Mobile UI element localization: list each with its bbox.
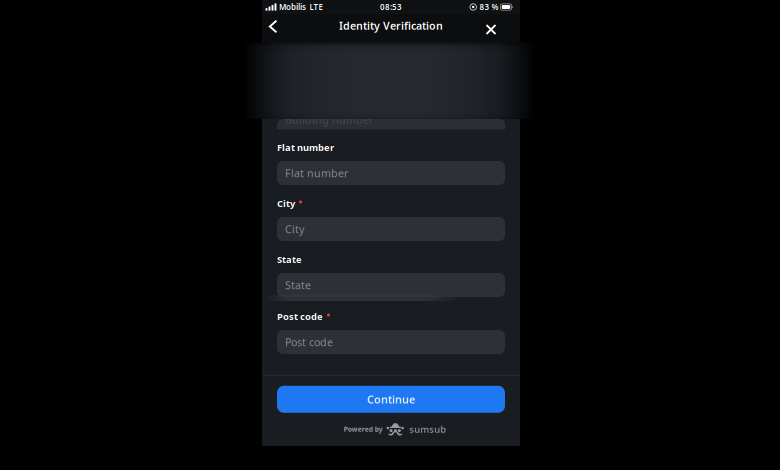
button[interactable]: State xyxy=(277,273,505,297)
staticText: State xyxy=(285,278,311,292)
staticText: Mobilis xyxy=(279,2,306,12)
staticText: sumsub xyxy=(409,423,446,435)
staticText: 83 % xyxy=(479,2,498,12)
button[interactable]: Post code xyxy=(277,330,505,354)
button[interactable]: Continue xyxy=(277,386,505,413)
staticText: Powered by xyxy=(344,425,383,434)
staticText: Building number xyxy=(285,112,373,127)
staticText: City xyxy=(277,197,295,210)
button[interactable]: City xyxy=(277,217,505,241)
staticText: 08:53 xyxy=(380,2,402,12)
staticText: LTE xyxy=(310,2,323,12)
staticText: City xyxy=(285,222,304,236)
button[interactable]: Flat number xyxy=(277,161,505,185)
staticText: Post code xyxy=(277,310,323,323)
staticText: Identity Verification xyxy=(339,18,443,33)
staticText: Continue xyxy=(367,392,415,406)
button[interactable]: Close xyxy=(479,18,503,40)
staticText: Flat number xyxy=(277,141,334,154)
staticText: Flat number xyxy=(285,166,348,180)
button[interactable]: Back xyxy=(261,15,285,37)
staticText: State xyxy=(277,253,302,266)
staticText: Post code xyxy=(285,335,333,349)
